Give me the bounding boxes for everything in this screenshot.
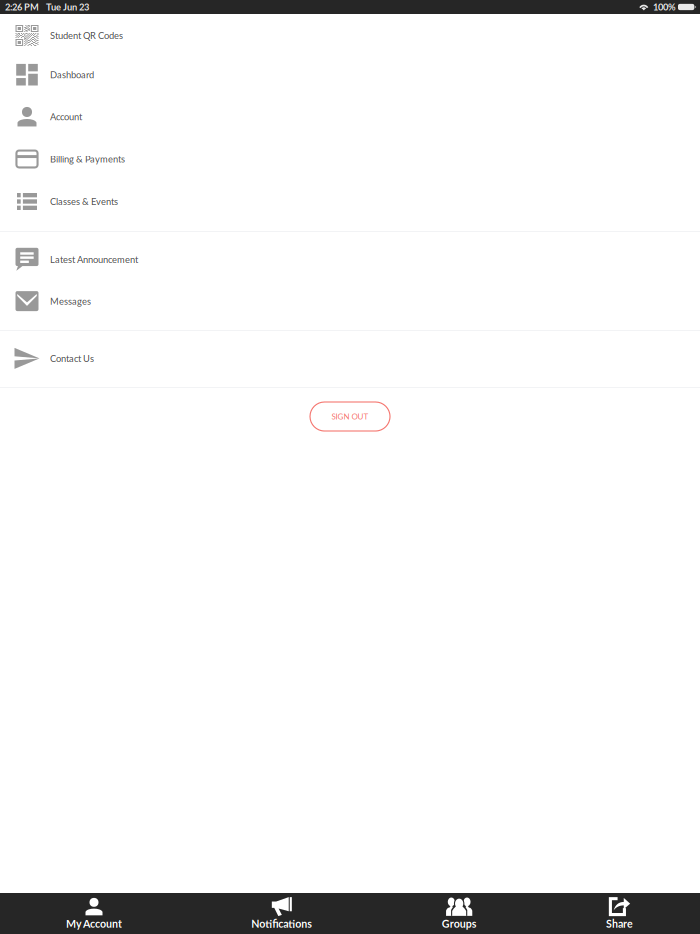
button[interactable]: Account — [0, 98, 700, 140]
button[interactable]: Contact Us — [0, 337, 700, 379]
button[interactable]: Classes & Events — [0, 182, 700, 224]
button[interactable]: Groups — [442, 893, 477, 934]
staticText: Student QR Codes — [50, 30, 123, 41]
button[interactable]: Latest Announcement — [0, 238, 700, 280]
staticText: Account — [50, 111, 82, 122]
button[interactable]: Dashboard — [0, 56, 700, 98]
staticText: Groups — [442, 917, 477, 930]
staticText: Share — [606, 917, 633, 930]
staticText: Tue Jun 23 — [46, 1, 89, 13]
staticText: 100% — [653, 1, 676, 13]
button[interactable]: Messages — [0, 280, 700, 322]
button[interactable]: My Account — [66, 893, 122, 934]
button[interactable]: Notifications — [251, 893, 312, 934]
button[interactable]: SIGN OUT — [310, 402, 390, 431]
staticText: SIGN OUT — [331, 412, 368, 421]
staticText: Messages — [50, 295, 91, 307]
staticText: 2:26 PM — [5, 1, 39, 13]
staticText: Contact Us — [50, 353, 94, 364]
button[interactable]: Billing & Payments — [0, 140, 700, 182]
staticText: Latest Announcement — [50, 254, 138, 265]
button[interactable]: Student QR Codes — [0, 14, 700, 56]
staticText: Classes & Events — [50, 196, 118, 207]
staticText: My Account — [66, 917, 122, 930]
staticText: Billing & Payments — [50, 153, 125, 165]
staticText: Notifications — [251, 917, 312, 930]
button[interactable]: Share — [606, 893, 633, 934]
staticText: Dashboard — [50, 69, 94, 80]
